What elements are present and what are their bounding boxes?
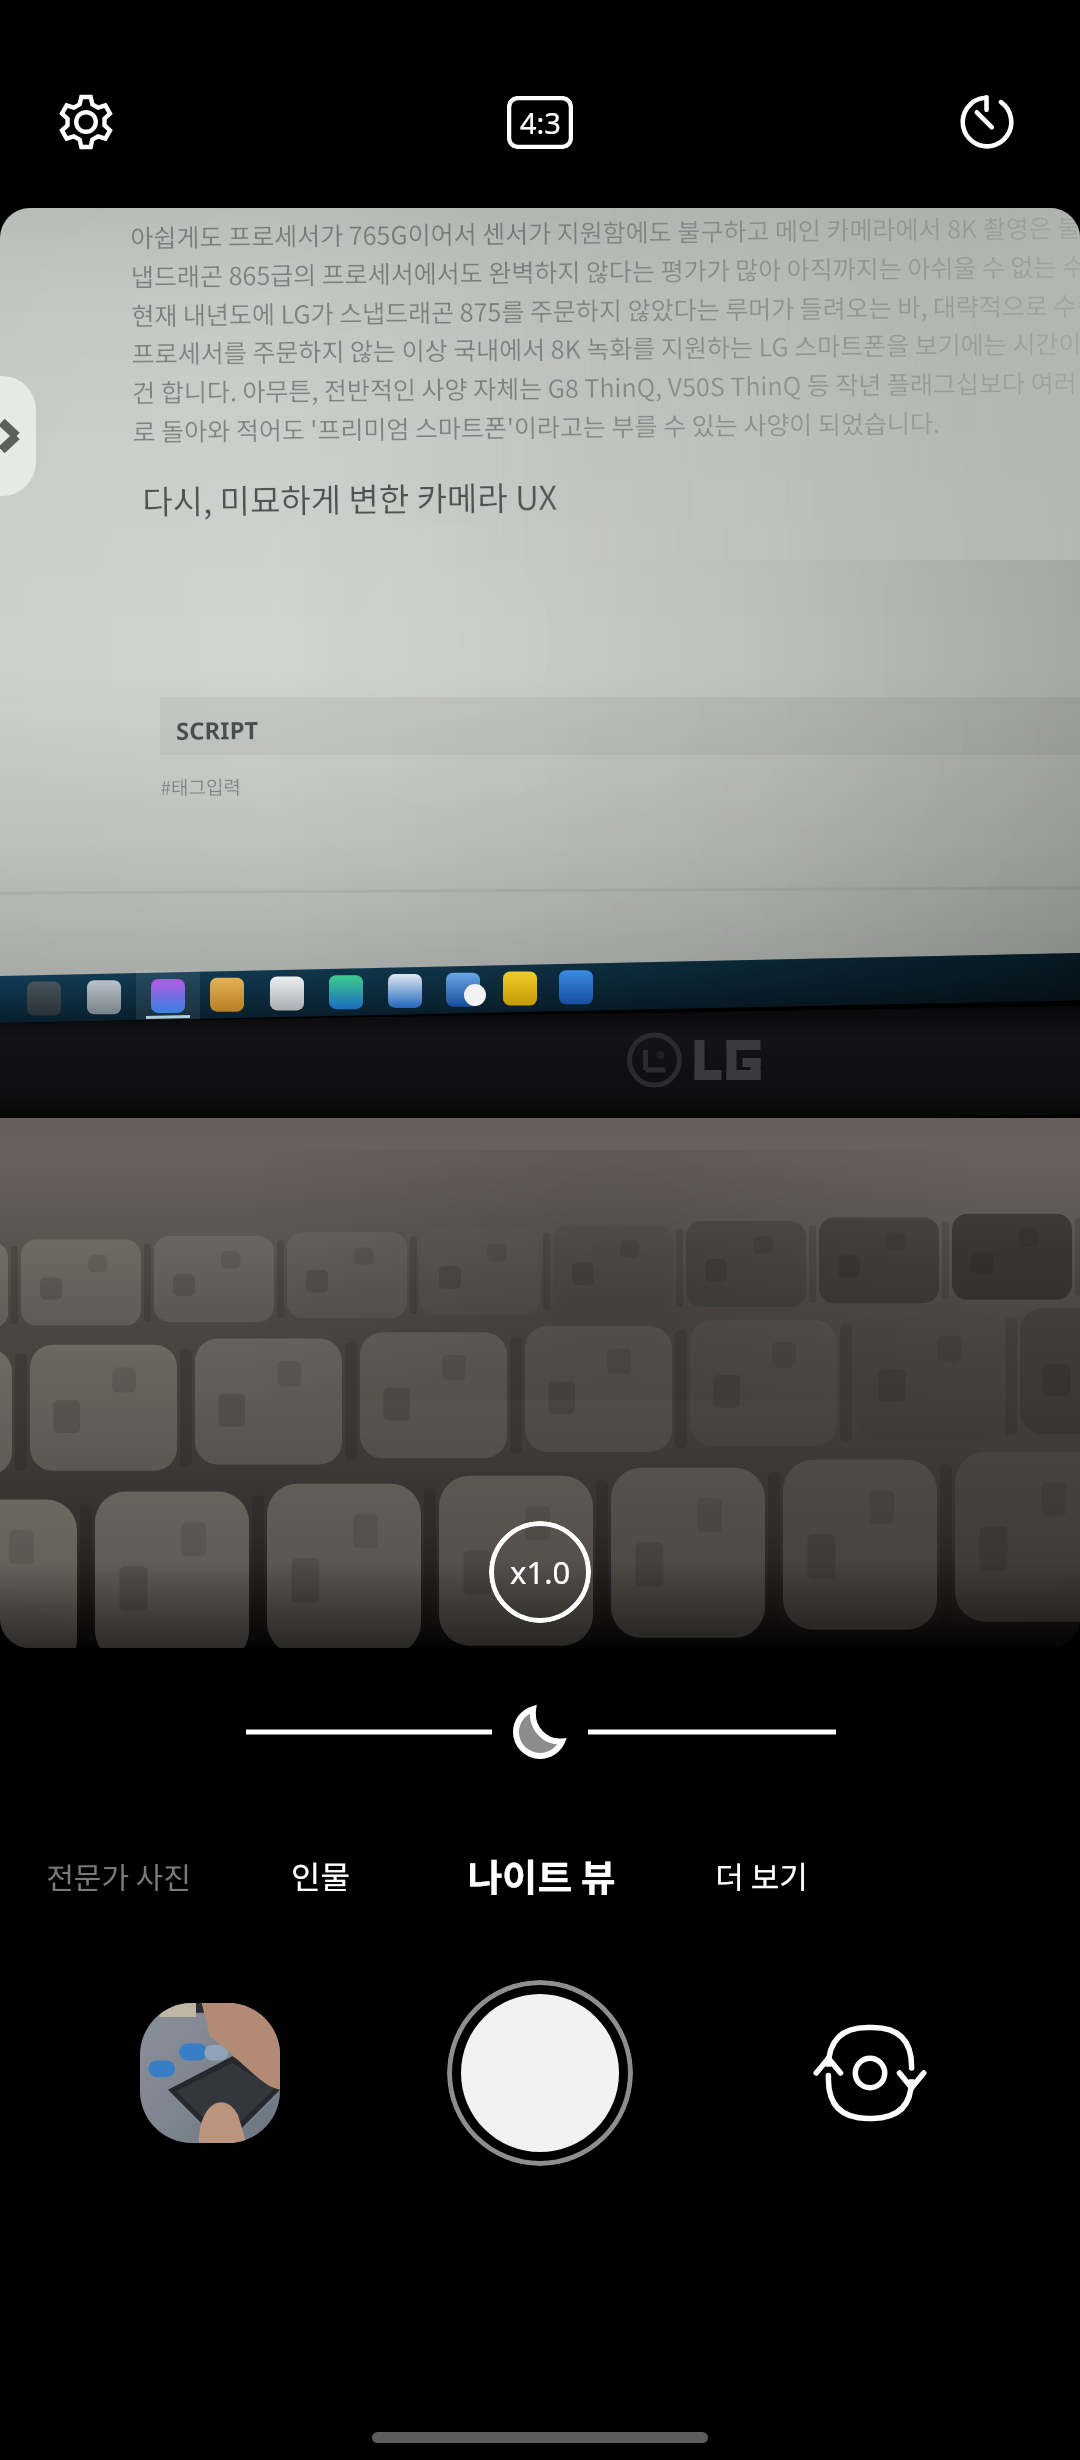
staticText: 4:3 bbox=[520, 103, 561, 142]
staticText: 나이트 뷰 bbox=[467, 1848, 616, 1903]
staticText: #태그입력 bbox=[160, 772, 242, 801]
button[interactable]: Gallery bbox=[140, 2003, 280, 2143]
staticText: 다시, 미묘하게 변한 카메라 UX bbox=[142, 472, 558, 524]
staticText: 냅드래곤 865급의 프로세서에서도 완벽하지 않다는 평가가 많아 아직까지는… bbox=[131, 246, 1080, 293]
button[interactable]: Night mode bbox=[508, 1700, 572, 1764]
staticText: 건 합니다. 아무튼, 전반적인 사양 자체는 G8 ThinQ, V50S T… bbox=[132, 362, 1080, 409]
staticText: 전문가 사진 bbox=[46, 1854, 191, 1897]
staticText: 현재 내년도에 LG가 스냅드래곤 875를 주문하지 않았다는 루머가 들려오… bbox=[131, 285, 1080, 332]
button[interactable]: 인물 bbox=[215, 1833, 425, 1917]
staticText: 더 보기 bbox=[715, 1853, 808, 1898]
button[interactable]: Timer bbox=[937, 72, 1037, 172]
staticText: SCRIPT bbox=[176, 713, 259, 747]
staticText: x1.0 bbox=[510, 1551, 571, 1593]
button[interactable]: Take photo bbox=[447, 1980, 633, 2166]
staticText: 아쉽게도 프로세서가 765G이어서 센서가 지원함에도 불구하고 메인 카메라… bbox=[130, 208, 1080, 254]
staticText: 프로세서를 주문하지 않는 이상 국내에서 8K 녹화를 지원하는 LG 스마트… bbox=[132, 323, 1080, 370]
button[interactable]: Show options bbox=[0, 376, 36, 496]
button[interactable]: x1.0 bbox=[489, 1521, 591, 1623]
button[interactable]: 나이트 뷰 bbox=[436, 1833, 646, 1917]
button[interactable]: Settings bbox=[36, 72, 136, 172]
staticText: 인물 bbox=[291, 1852, 350, 1898]
button[interactable]: 4:3 bbox=[507, 96, 573, 149]
staticText: 로 돌아와 적어도 '프리미엄 스마트폰'이라고는 부를 수 있는 사양이 되었… bbox=[132, 401, 1080, 448]
button[interactable]: 전문가 사진 bbox=[13, 1833, 223, 1917]
button[interactable]: 더 보기 bbox=[656, 1833, 866, 1917]
button[interactable]: Switch camera bbox=[800, 2003, 940, 2143]
